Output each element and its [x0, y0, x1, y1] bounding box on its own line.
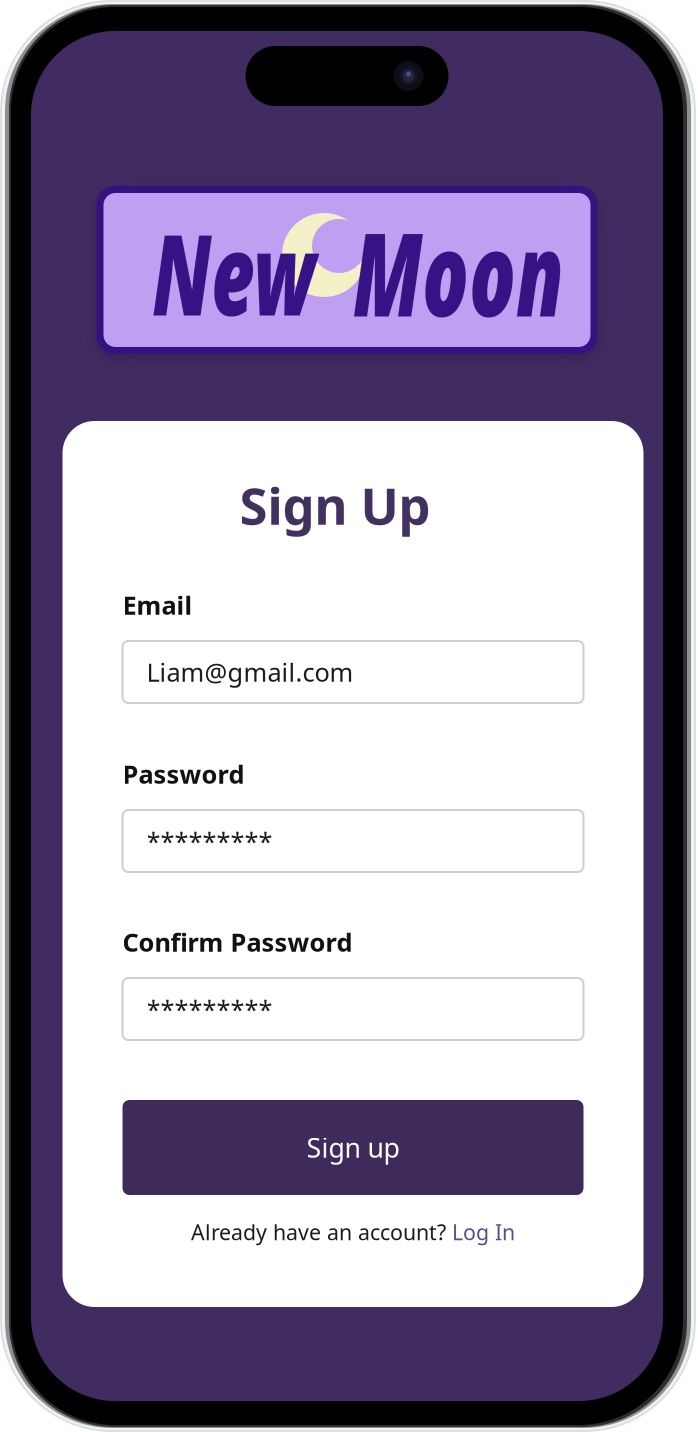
button[interactable]: Log In	[452, 1218, 515, 1246]
staticText: Password	[122, 757, 244, 791]
staticText: Email	[122, 588, 192, 622]
staticText: Already have an account?	[191, 1218, 452, 1246]
button[interactable]: Sign up	[122, 1100, 583, 1195]
staticText: Sign up	[306, 1130, 399, 1165]
staticText: Sign Up	[239, 471, 430, 539]
staticText: Liam@gmail.com	[146, 655, 353, 689]
staticText: Confirm Password	[122, 925, 352, 959]
staticText: *********	[146, 824, 272, 858]
button[interactable]: *********	[122, 810, 583, 872]
staticText: Log In	[452, 1218, 515, 1246]
staticText: Moon	[350, 196, 665, 348]
staticText: *********	[146, 992, 272, 1026]
staticText: New	[51, 198, 294, 346]
button[interactable]: *********	[122, 978, 583, 1040]
button[interactable]: Liam@gmail.com	[122, 641, 583, 703]
